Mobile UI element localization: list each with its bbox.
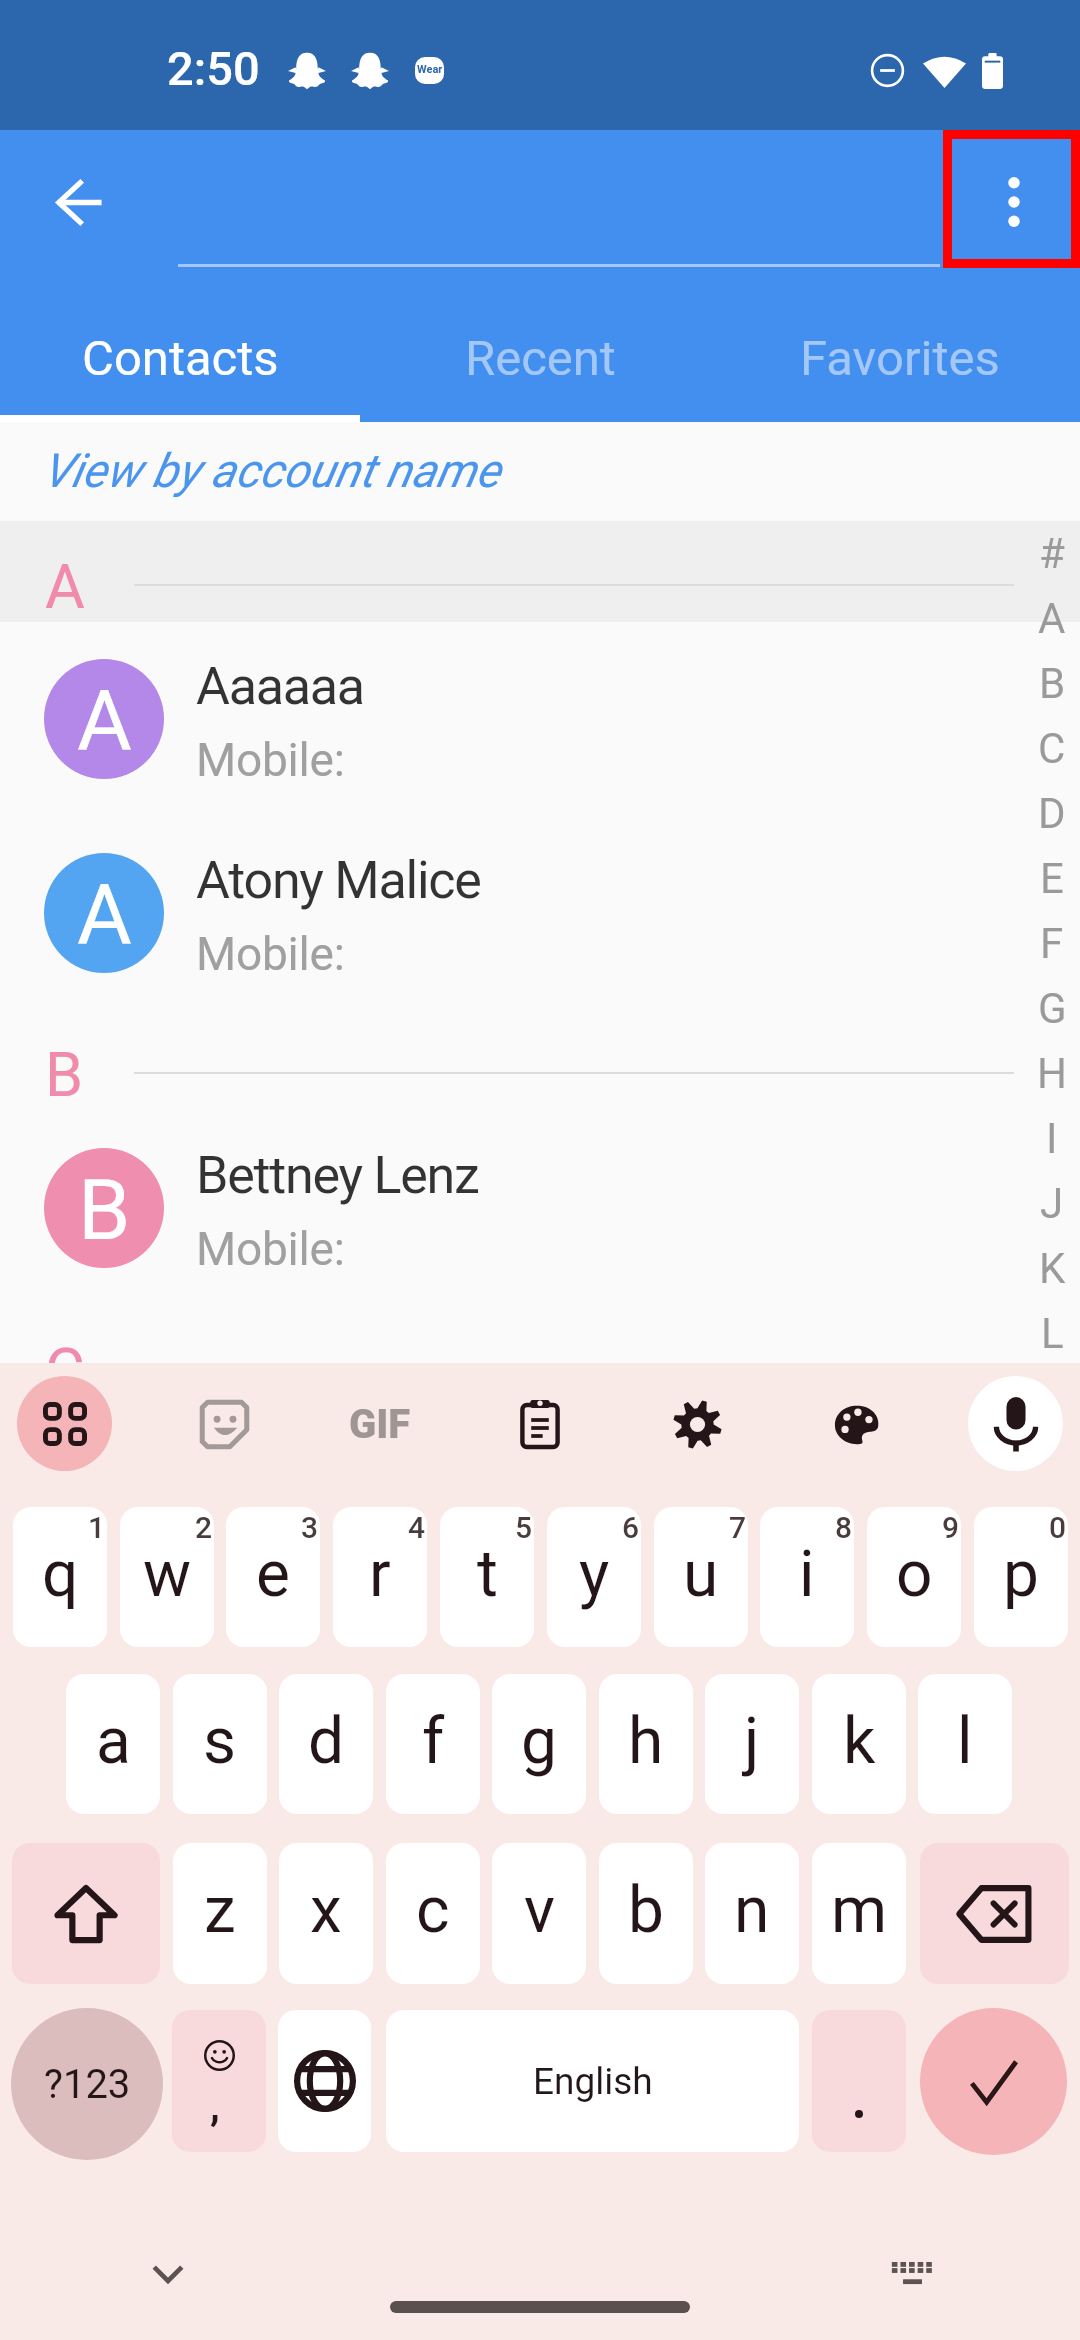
staticText: 0 — [1049, 1510, 1067, 1545]
staticText: n — [734, 1873, 770, 1948]
button[interactable]: View by account name — [0, 422, 1080, 521]
button[interactable]: A — [0, 816, 1080, 1010]
staticText: , — [210, 2083, 220, 2130]
staticText: z — [204, 1873, 236, 1948]
button[interactable]: m — [812, 1843, 906, 1984]
button[interactable]: g — [492, 1674, 586, 1814]
button[interactable]: Clipboard — [492, 1376, 588, 1472]
staticText: j — [744, 1704, 760, 1779]
button[interactable]: Period — [812, 2010, 906, 2152]
button[interactable]: Backspace — [920, 1843, 1069, 1984]
staticText: Favorites — [800, 330, 1000, 387]
button[interactable]: Settings — [649, 1376, 745, 1472]
button[interactable]: Theme — [809, 1376, 905, 1472]
staticText: Mobile: — [196, 733, 345, 787]
button[interactable]: s — [173, 1674, 267, 1814]
staticText: o — [896, 1537, 933, 1612]
staticText: 7 — [729, 1510, 747, 1545]
button[interactable]: r — [333, 1507, 427, 1647]
button[interactable]: Contacts — [0, 308, 360, 422]
button[interactable]: i — [760, 1507, 854, 1647]
staticText: v — [524, 1873, 555, 1948]
button[interactable]: j — [705, 1674, 799, 1814]
staticText: w — [143, 1537, 192, 1612]
staticText: c — [416, 1873, 450, 1948]
staticText: Atony Malice — [196, 850, 481, 911]
button[interactable]: Shift — [12, 1843, 160, 1984]
button[interactable]: Voice input — [968, 1376, 1063, 1471]
staticText: q — [42, 1537, 79, 1612]
staticText: u — [683, 1537, 719, 1612]
staticText: g — [521, 1704, 557, 1779]
button[interactable]: q — [13, 1507, 107, 1647]
button[interactable]: v — [492, 1843, 586, 1984]
button[interactable]: c — [386, 1843, 480, 1984]
staticText: 9 — [942, 1510, 960, 1545]
staticText: Wear — [417, 63, 443, 76]
staticText: d — [308, 1704, 345, 1779]
staticText: Recent — [465, 330, 616, 387]
button[interactable]: Stickers — [176, 1376, 272, 1472]
staticText: GIF — [349, 1401, 411, 1448]
button[interactable]: p — [974, 1507, 1068, 1647]
staticText: ?123 — [44, 2061, 131, 2108]
button[interactable]: b — [599, 1843, 693, 1984]
button[interactable]: y — [547, 1507, 641, 1647]
staticText: s — [203, 1704, 237, 1779]
button[interactable]: ?123 — [11, 2008, 163, 2160]
staticText: 2:50 — [167, 41, 260, 96]
staticText: p — [1003, 1537, 1039, 1612]
button[interactable]: Favorites — [720, 308, 1080, 422]
staticText: 2 — [195, 1510, 213, 1545]
button[interactable]: n — [705, 1843, 799, 1984]
button[interactable]: e — [226, 1507, 320, 1647]
staticText: l — [957, 1704, 973, 1779]
staticText: H — [1037, 1049, 1067, 1098]
staticText: View by account name — [42, 443, 500, 498]
button[interactable]: d — [279, 1674, 373, 1814]
button[interactable]: w — [120, 1507, 214, 1647]
staticText: x — [310, 1873, 342, 1948]
button[interactable]: Apps — [17, 1376, 112, 1471]
button[interactable]: B — [0, 1111, 1080, 1305]
staticText: A — [45, 551, 85, 622]
staticText: r — [369, 1537, 391, 1612]
button[interactable]: Language — [278, 2010, 371, 2152]
staticText: Contacts — [82, 330, 279, 387]
staticText: A — [77, 866, 132, 964]
staticText: i — [799, 1537, 815, 1612]
button[interactable]: Switch keyboard — [868, 2230, 956, 2318]
button[interactable]: x — [279, 1843, 373, 1984]
button[interactable]: a — [66, 1674, 160, 1814]
button[interactable]: Back — [16, 142, 136, 262]
staticText: B — [45, 1039, 84, 1110]
button[interactable]: Emoji and comma — [172, 2010, 266, 2152]
button[interactable]: A — [0, 622, 1080, 816]
staticText: # — [1039, 529, 1065, 578]
staticText: h — [628, 1704, 664, 1779]
staticText: 8 — [835, 1510, 853, 1545]
staticText: 3 — [301, 1510, 319, 1545]
staticText: 6 — [622, 1510, 640, 1545]
button[interactable]: h — [599, 1674, 693, 1814]
button[interactable]: Done — [920, 2008, 1067, 2155]
button[interactable]: u — [654, 1507, 748, 1647]
button[interactable]: Recent — [360, 308, 720, 422]
button[interactable]: o — [867, 1507, 961, 1647]
staticText: f — [422, 1704, 445, 1779]
staticText: b — [628, 1873, 664, 1948]
button[interactable]: More options — [943, 130, 1080, 268]
button[interactable]: z — [173, 1843, 267, 1984]
staticText: C — [45, 1335, 85, 1406]
staticText: Mobile: — [196, 927, 345, 981]
staticText: 4 — [408, 1510, 426, 1545]
button[interactable]: l — [918, 1674, 1012, 1814]
staticText: k — [843, 1704, 876, 1779]
button[interactable]: Hide keyboard — [124, 2230, 212, 2318]
button[interactable]: k — [812, 1674, 906, 1814]
button[interactable]: English — [386, 2010, 799, 2152]
button[interactable]: GIF — [332, 1394, 428, 1454]
button[interactable]: t — [440, 1507, 534, 1647]
staticText: m — [831, 1873, 888, 1948]
button[interactable]: f — [386, 1674, 480, 1814]
